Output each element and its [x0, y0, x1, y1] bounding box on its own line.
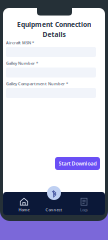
staticText: Galley Number *: [6, 60, 38, 66]
button[interactable]: Logs: [69, 194, 99, 216]
staticText: Home: [18, 207, 29, 212]
staticText: Details: [42, 30, 65, 39]
staticText: Start Download: [58, 160, 96, 167]
staticText: Aircraft MSN *: [6, 40, 34, 45]
staticText: Equipment Connection: [17, 20, 91, 29]
button[interactable]: Home: [9, 194, 39, 216]
staticText: Connect: [45, 207, 62, 212]
staticText: Logs: [80, 207, 88, 212]
button[interactable]: Start Download: [55, 157, 100, 170]
button[interactable]: Connect: [47, 186, 61, 200]
button[interactable]: Connect: [39, 194, 69, 216]
staticText: Galley Compartment Number *: [6, 81, 68, 86]
